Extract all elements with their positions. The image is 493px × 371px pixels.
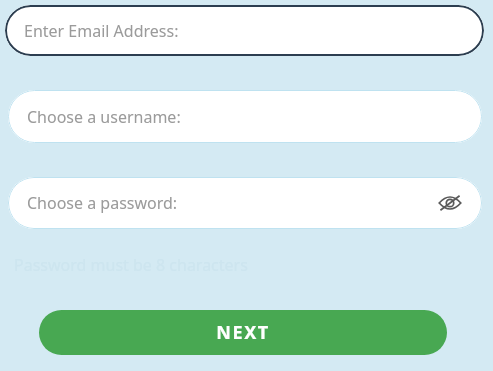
staticText: Choose a username: (27, 106, 181, 128)
button[interactable]: Choose a username: (8, 90, 482, 143)
staticText: Enter Email Address: (24, 20, 179, 42)
button[interactable]: NEXT (39, 310, 447, 355)
button[interactable]: Choose a password: (8, 177, 482, 229)
button[interactable]: Enter Email Address: (5, 5, 484, 56)
staticText: Choose a password: (27, 192, 178, 214)
staticText: NEXT (216, 320, 270, 345)
button[interactable]: Show password (435, 188, 465, 218)
